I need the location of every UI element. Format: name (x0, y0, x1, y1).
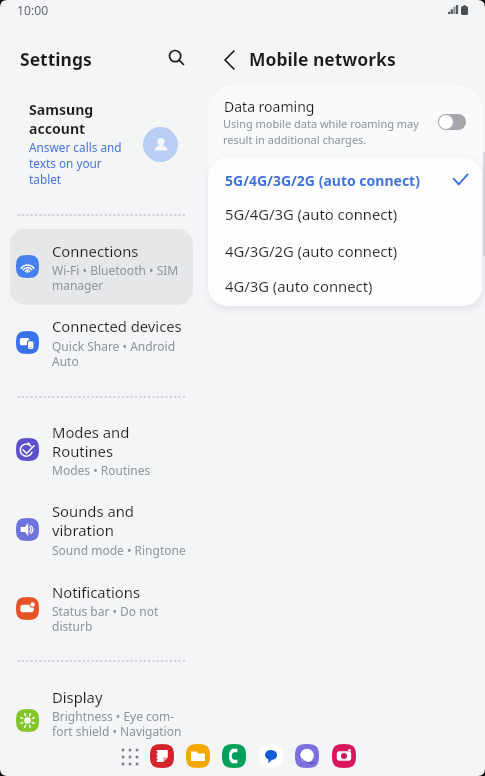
button[interactable] (0, 94, 485, 192)
staticText: Modes • Routines (52, 463, 188, 478)
button[interactable] (10, 496, 193, 558)
staticText: Samsung account (29, 100, 94, 138)
staticText: Wi-Fi • Bluetooth • SIM manager (52, 263, 188, 293)
staticText: Connections (52, 242, 188, 261)
staticText: 4G/3G/2G (auto connect) (225, 242, 398, 261)
button[interactable]: NOTES (150, 744, 174, 768)
staticText: Display (52, 688, 188, 707)
staticText: Connected devices (52, 317, 188, 336)
button[interactable]: FILES (186, 744, 210, 768)
staticText: Data roaming (224, 97, 315, 116)
button[interactable] (208, 85, 482, 155)
button[interactable] (208, 195, 482, 232)
staticText: Using mobile data while roaming may resu… (223, 116, 419, 148)
staticText: Notifications (52, 583, 188, 602)
button[interactable]: MSG (259, 744, 283, 768)
button[interactable] (10, 236, 193, 294)
button[interactable]: Back (209, 40, 249, 80)
staticText: Answer calls and texts on your tablet (29, 139, 122, 187)
button[interactable] (10, 311, 193, 369)
button[interactable] (10, 417, 193, 479)
button[interactable]: CAMERA (332, 744, 356, 768)
button[interactable]: INTERNET (295, 744, 319, 768)
button[interactable] (10, 577, 193, 635)
button[interactable]: Data roaming (438, 114, 466, 130)
button[interactable] (208, 162, 482, 195)
button[interactable]: Apps (115, 742, 145, 772)
staticText: Modes and Routines (52, 423, 188, 461)
staticText: 4G/3G (auto connect) (225, 277, 373, 296)
staticText: Sound mode • Ringtone (52, 543, 188, 558)
button[interactable] (208, 267, 482, 306)
staticText: 5G/4G/3G (auto connect) (225, 205, 398, 224)
button[interactable]: Search (156, 37, 196, 77)
staticText: Brightness • Eye com- fort shield • Navi… (52, 709, 188, 739)
staticText: Mobile networks (249, 48, 396, 71)
staticText: 10:00 (17, 3, 49, 19)
button[interactable] (208, 232, 482, 268)
staticText: Status bar • Do not disturb (52, 604, 188, 634)
button[interactable]: PHONE (222, 744, 246, 768)
staticText: 5G/4G/3G/2G (auto connect) (225, 172, 420, 190)
staticText: Sounds and vibration (52, 502, 188, 540)
button[interactable] (10, 682, 193, 740)
staticText: Settings (20, 48, 92, 71)
staticText: Quick Share • Android Auto (52, 339, 188, 369)
